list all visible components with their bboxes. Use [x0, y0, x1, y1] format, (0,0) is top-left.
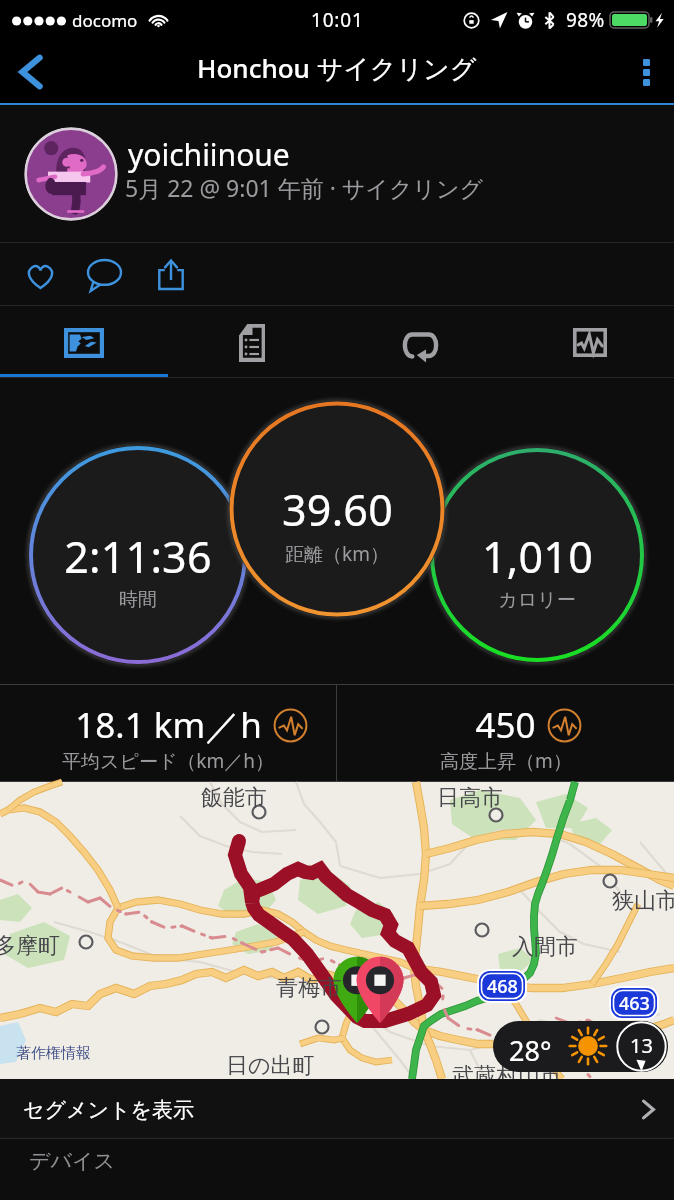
staticText: 多摩町 [0, 932, 60, 960]
staticText: 28° [509, 1032, 552, 1069]
staticText: デバイス [29, 1148, 115, 1174]
button[interactable]: Details [168, 306, 336, 377]
staticText: 463 [619, 991, 650, 1016]
staticText: 450 [475, 701, 536, 749]
button[interactable]: Comment [72, 243, 136, 306]
staticText: 武蔵村山市 [452, 1062, 562, 1090]
staticText: 13 [630, 1032, 653, 1059]
staticText: 468 [487, 974, 518, 999]
staticText: 時間 [119, 588, 157, 612]
staticText: 平均スピード（km／h） [62, 748, 274, 774]
staticText: カロリー [498, 588, 576, 612]
button[interactable]: Share [136, 243, 200, 306]
staticText: 2:11:36 [64, 527, 212, 586]
button[interactable]: Weather 28 degrees [493, 1021, 668, 1072]
staticText: 5月 22 @ 9:01 午前 · サイクリング [125, 172, 484, 203]
button[interactable]: 18.1 km／h [0, 685, 336, 782]
staticText: 入間市 [512, 933, 578, 961]
staticText: 日高市 [437, 784, 503, 812]
button[interactable]: 450 [337, 685, 674, 782]
staticText: 日の出町 [226, 1052, 315, 1080]
button[interactable]: Laps [336, 306, 505, 377]
staticText: Honchou サイクリング [197, 50, 477, 86]
staticText: 1,010 [482, 527, 593, 586]
staticText: 狭山市 [612, 887, 674, 915]
staticText: docomo [72, 9, 138, 32]
button[interactable]: Back [0, 40, 64, 103]
staticText: 39.60 [282, 480, 393, 539]
staticText: 高度上昇（m） [440, 748, 572, 774]
staticText: yoichiinoue [128, 134, 290, 175]
button[interactable]: More options [618, 40, 674, 103]
button[interactable]: Map [0, 306, 168, 377]
staticText: 10:01 [311, 7, 364, 33]
staticText: 飯能市 [201, 784, 267, 812]
staticText: セグメントを表示 [23, 1097, 194, 1123]
button[interactable]: Analysis [505, 306, 674, 377]
staticText: 著作権情報 [16, 1044, 91, 1063]
button[interactable]: セグメントを表示 [0, 1079, 674, 1138]
staticText: 98% [566, 7, 605, 33]
button[interactable]: Like [8, 243, 72, 306]
staticText: 18.1 km／h [75, 701, 262, 749]
staticText: 距離（km） [285, 541, 389, 567]
staticText: 青梅市 [276, 974, 342, 1002]
